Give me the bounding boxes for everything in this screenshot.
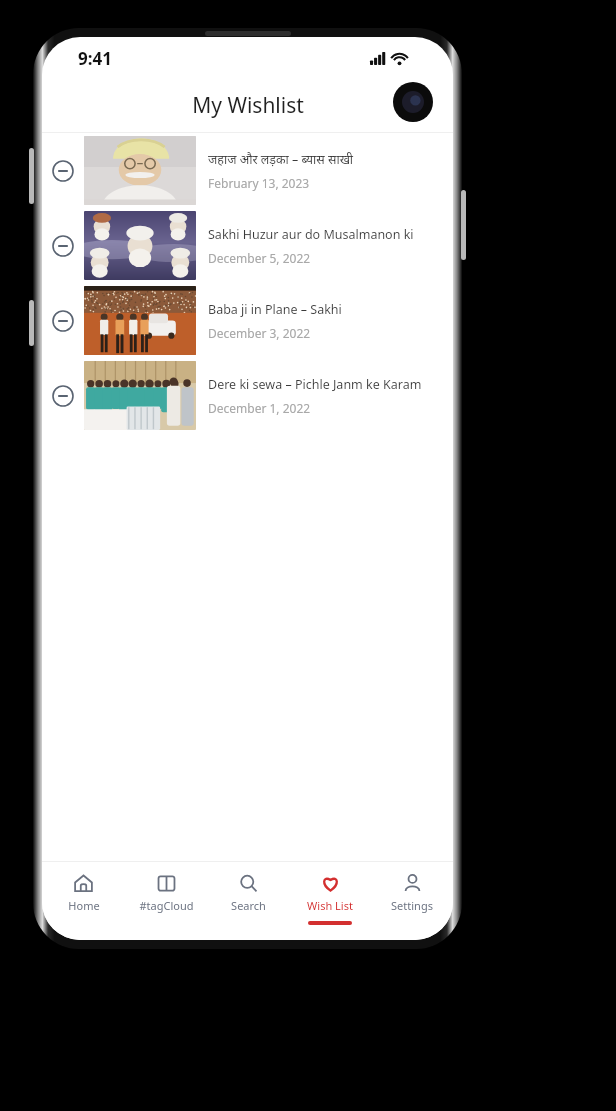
staticText: February 13, 2023 (208, 175, 310, 191)
staticText: December 3, 2022 (208, 325, 311, 341)
staticText: Home (68, 898, 100, 913)
button[interactable]: Home (42, 862, 125, 913)
staticText: Sakhi Huzur aur do Musalmanon ki (208, 226, 414, 243)
staticText: Baba ji in Plane – Sakhi (208, 301, 342, 318)
button[interactable]: #tagCloud (125, 862, 207, 913)
staticText: Dere ki sewa – Pichle Janm ke Karam (208, 376, 422, 393)
button[interactable]: Settings (371, 862, 453, 913)
button[interactable]: Remove from wish list (42, 358, 453, 433)
button[interactable]: Remove from wish list (42, 283, 84, 358)
staticText: December 5, 2022 (208, 250, 311, 266)
staticText: Wish List (307, 898, 353, 913)
staticText: Search (231, 898, 266, 913)
button[interactable]: Remove from wish list (42, 208, 84, 283)
staticText: जहाज और लड़का – ब्यास साखी (208, 151, 354, 168)
staticText: December 1, 2022 (208, 400, 311, 416)
staticText: 9:41 (78, 47, 112, 70)
button[interactable]: Remove from wish list (42, 358, 84, 433)
staticText: Settings (391, 898, 433, 913)
button[interactable]: Remove from wish list (42, 133, 453, 208)
button[interactable]: Wish List (289, 862, 371, 925)
button[interactable]: Remove from wish list (42, 133, 84, 208)
staticText: #tagCloud (139, 898, 194, 913)
button[interactable]: Search (207, 862, 289, 913)
button[interactable]: Remove from wish list (42, 283, 453, 358)
button[interactable]: Remove from wish list (42, 208, 453, 283)
staticText: My Wishlist (192, 91, 304, 120)
